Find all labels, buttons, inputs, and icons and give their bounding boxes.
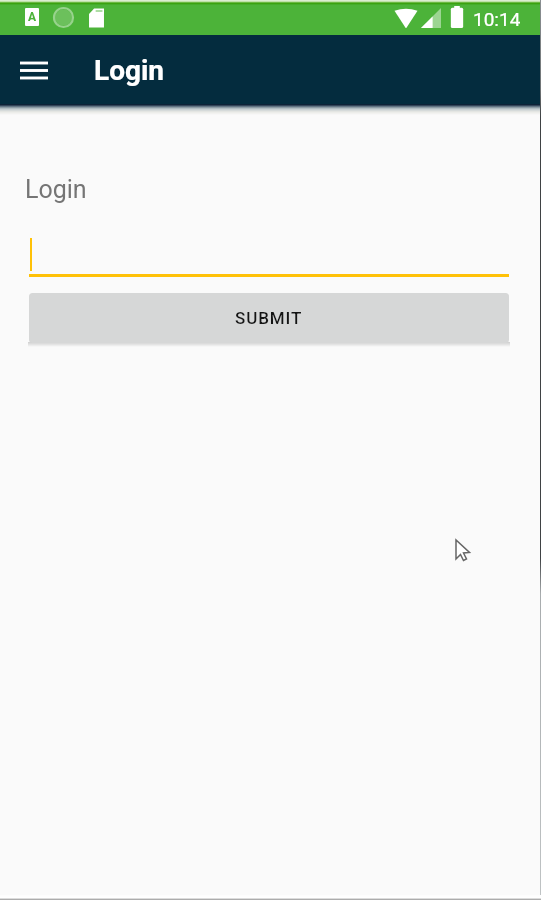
staticText: Login: [25, 175, 87, 204]
button[interactable]: SUBMIT: [29, 293, 509, 343]
staticText: SUBMIT: [235, 308, 303, 328]
button[interactable]: Open navigation menu: [10, 46, 58, 94]
staticText: A: [28, 10, 37, 24]
button[interactable]: Login text field: [29, 234, 509, 277]
staticText: Login: [94, 54, 165, 87]
staticText: 10:14: [473, 8, 521, 30]
